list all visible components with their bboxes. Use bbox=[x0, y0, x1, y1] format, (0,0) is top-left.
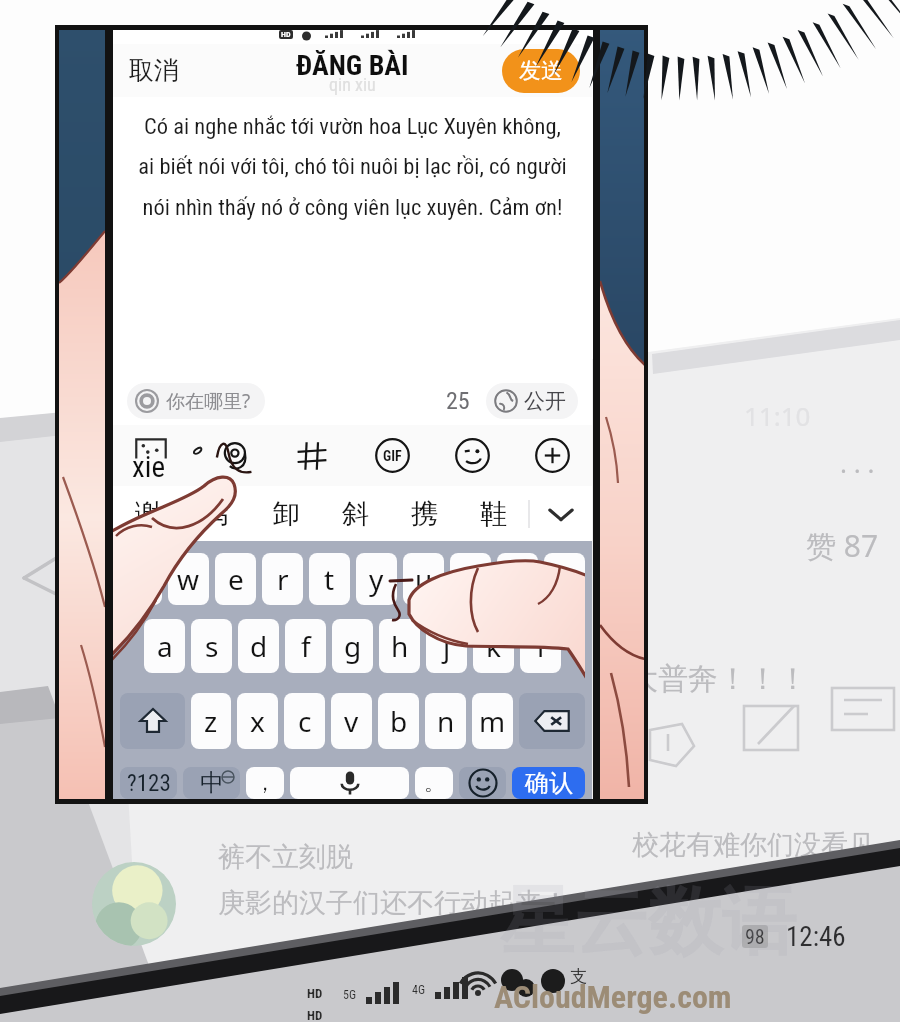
button[interactable]: d bbox=[238, 619, 279, 673]
button[interactable]: Emoji keyboard bbox=[459, 767, 506, 799]
staticText: 12:46 bbox=[786, 921, 846, 953]
button[interactable]: y bbox=[356, 553, 397, 605]
staticText: c bbox=[298, 702, 312, 740]
button[interactable]: Mention someone bbox=[192, 425, 272, 486]
button[interactable]: 你在哪里? bbox=[127, 383, 265, 419]
staticText: 支 bbox=[570, 966, 587, 987]
button[interactable]: z bbox=[191, 693, 231, 749]
button[interactable]: 鞋 bbox=[459, 486, 528, 541]
button[interactable]: m bbox=[472, 693, 513, 749]
staticText: · · · bbox=[840, 452, 875, 487]
button[interactable]: 发送 bbox=[502, 49, 580, 93]
staticText: 校花有难你们没看见 bbox=[632, 828, 875, 862]
button[interactable]: n bbox=[425, 693, 466, 749]
button[interactable]: 卸 bbox=[252, 486, 321, 541]
button[interactable]: 。 bbox=[415, 767, 453, 799]
button[interactable]: Shift bbox=[120, 693, 185, 749]
button[interactable]: q bbox=[120, 553, 162, 605]
button[interactable]: x bbox=[237, 693, 278, 749]
staticText: 4G bbox=[412, 983, 426, 997]
staticText: l bbox=[537, 627, 545, 665]
button[interactable]: 取消 bbox=[113, 47, 195, 94]
staticText: u bbox=[415, 560, 433, 598]
staticText: GIF bbox=[383, 448, 402, 464]
button[interactable]: ?123 bbox=[120, 767, 177, 799]
staticText: 11:10 bbox=[744, 398, 811, 433]
button[interactable]: i bbox=[450, 553, 491, 605]
button[interactable]: f bbox=[285, 619, 326, 673]
button[interactable]: 公开 bbox=[486, 383, 578, 419]
button[interactable]: u bbox=[403, 553, 444, 605]
staticText: 庚影的汉子们还不行动起来！ bbox=[218, 886, 569, 920]
staticText: 赞 87 bbox=[806, 525, 879, 566]
staticText: ACloudMerge.com bbox=[494, 978, 732, 1016]
button[interactable]: h bbox=[379, 619, 420, 673]
staticText: 卸 bbox=[273, 497, 300, 531]
button[interactable]: o bbox=[497, 553, 538, 605]
staticText: j bbox=[443, 627, 451, 665]
staticText: e bbox=[228, 560, 244, 598]
button[interactable]: Voice input bbox=[290, 767, 409, 799]
staticText: HD bbox=[281, 30, 291, 39]
staticText: 确认 bbox=[525, 768, 573, 798]
staticText: r bbox=[277, 560, 289, 598]
button[interactable]: 中 bbox=[183, 767, 240, 799]
staticText: 大普奔！！！ bbox=[628, 660, 808, 698]
button[interactable]: Add photo bbox=[113, 425, 192, 486]
button[interactable]: k bbox=[473, 619, 514, 673]
button[interactable]: 斜 bbox=[321, 486, 390, 541]
staticText: h bbox=[391, 627, 409, 665]
button[interactable]: l bbox=[520, 619, 561, 673]
button[interactable]: j bbox=[426, 619, 467, 673]
button[interactable]: Insert GIF bbox=[352, 425, 432, 486]
staticText: x bbox=[250, 702, 265, 740]
staticText: 中 bbox=[200, 768, 224, 798]
staticText: v bbox=[344, 702, 359, 740]
staticText: f bbox=[301, 627, 311, 665]
staticText: d bbox=[250, 627, 268, 665]
button[interactable]: t bbox=[309, 553, 350, 605]
button[interactable]: s bbox=[191, 619, 232, 673]
button[interactable]: 确认 bbox=[512, 767, 585, 799]
button[interactable]: b bbox=[378, 693, 419, 749]
button[interactable]: Hashtag bbox=[272, 425, 352, 486]
staticText: p bbox=[556, 560, 574, 598]
staticText: ， bbox=[255, 771, 275, 796]
button[interactable]: 谢 bbox=[113, 486, 183, 541]
button[interactable]: 写 bbox=[183, 486, 252, 541]
staticText: 98 bbox=[745, 925, 765, 948]
staticText: b bbox=[390, 702, 408, 740]
staticText: o bbox=[509, 560, 526, 598]
staticText: 你在哪里? bbox=[166, 388, 251, 414]
staticText: 5G bbox=[343, 988, 357, 1002]
button[interactable]: r bbox=[262, 553, 303, 605]
button[interactable]: v bbox=[331, 693, 372, 749]
staticText: t bbox=[324, 560, 335, 598]
staticText: 斜 bbox=[342, 497, 369, 531]
staticText: y bbox=[369, 560, 384, 598]
staticText: ĐĂNG BÀI bbox=[296, 49, 409, 82]
button[interactable]: p bbox=[544, 553, 585, 605]
staticText: w bbox=[177, 560, 200, 598]
button[interactable]: Expand candidates bbox=[530, 486, 592, 541]
button[interactable]: g bbox=[332, 619, 373, 673]
staticText: 鞋 bbox=[480, 497, 507, 531]
staticText: 携 bbox=[411, 497, 438, 531]
button[interactable]: More options bbox=[512, 425, 592, 486]
button[interactable]: 携 bbox=[390, 486, 459, 541]
staticText: 取消 bbox=[129, 55, 179, 86]
staticText: HD bbox=[307, 986, 323, 1001]
button[interactable]: w bbox=[168, 553, 209, 605]
staticText: 星云数语 bbox=[500, 876, 796, 969]
staticText: 裤不立刻脱 bbox=[218, 840, 353, 874]
button[interactable]: ， bbox=[246, 767, 284, 799]
button[interactable]: c bbox=[284, 693, 325, 749]
staticText: m bbox=[479, 702, 506, 740]
button[interactable]: Emoji bbox=[432, 425, 512, 486]
button[interactable]: a bbox=[144, 619, 185, 673]
button[interactable]: Backspace bbox=[519, 693, 585, 749]
button[interactable]: e bbox=[215, 553, 256, 605]
staticText: k bbox=[486, 627, 501, 665]
staticText: 谢 bbox=[135, 497, 162, 531]
